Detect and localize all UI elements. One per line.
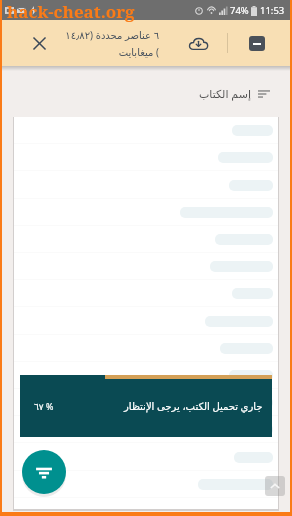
button[interactable]: جاري تحميل الكتب، يرجى الإنتظار: [20, 375, 272, 437]
button[interactable]: Download: [185, 30, 211, 56]
staticText: ٦ عناصر محددة (١٤٫٨٢: [65, 28, 159, 42]
button[interactable]: Scroll to top: [265, 476, 285, 496]
staticText: ميغابايت (: [118, 45, 159, 59]
staticText: 11:53: [260, 4, 285, 17]
staticText: ٦٧ %: [34, 400, 54, 412]
staticText: 74%: [230, 4, 249, 17]
button[interactable]: إسم الكتاب: [199, 86, 270, 101]
staticText: جاري تحميل الكتب، يرجى الإنتظار: [124, 399, 263, 413]
button[interactable]: Close: [24, 28, 55, 59]
button[interactable]: Deselect all: [249, 36, 265, 51]
staticText: hack-cheat.org: [7, 0, 135, 23]
staticText: إسم الكتاب: [199, 86, 251, 101]
button[interactable]: Filter: [22, 450, 66, 494]
